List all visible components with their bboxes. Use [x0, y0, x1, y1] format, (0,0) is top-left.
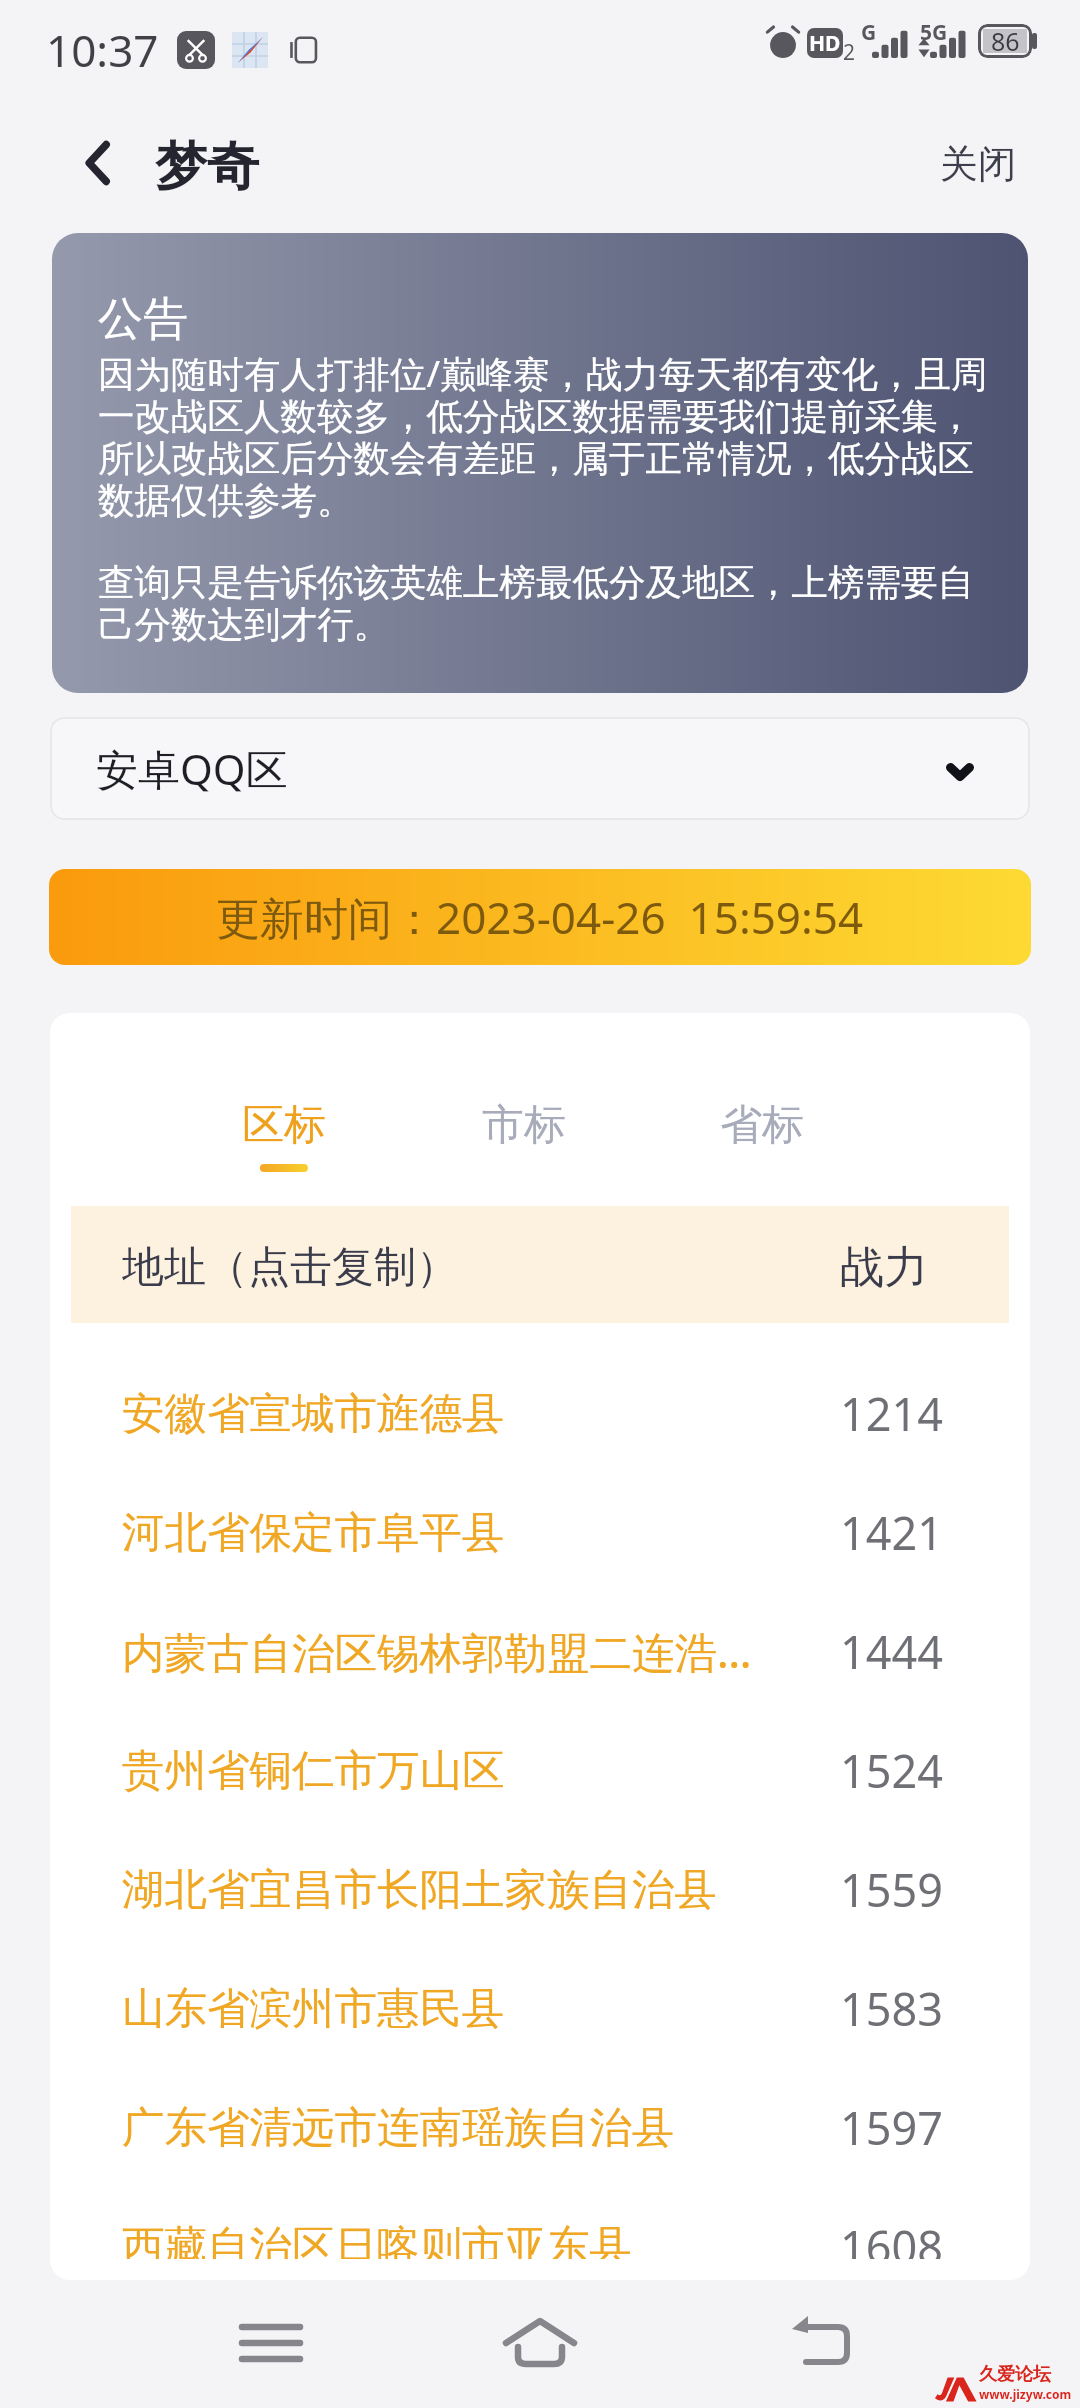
- staticText: 关闭: [940, 140, 1016, 188]
- staticText: 久爱论坛: [979, 2363, 1051, 2386]
- staticText: G: [861, 18, 877, 47]
- staticText: HD: [809, 29, 841, 58]
- staticText: 公告: [98, 291, 188, 348]
- staticText: 山东省滨州市惠民县: [122, 1982, 505, 2036]
- staticText: 省标: [720, 1099, 804, 1152]
- staticText: 广东省清远市连南瑶族自治县: [122, 2101, 675, 2155]
- button[interactable]: 区标: [224, 1099, 344, 1172]
- button[interactable]: 湖北省宜昌市长阳土家族自治县: [50, 1830, 1030, 1949]
- staticText: 5G: [920, 18, 948, 47]
- staticText: 西藏自治区日喀则市亚东县: [122, 2220, 632, 2259]
- staticText: 1597: [840, 2097, 943, 2158]
- staticText: 更新时间：2023-04-26 15:59:54: [216, 887, 864, 947]
- staticText: 1444: [840, 1621, 943, 1682]
- staticText: 1583: [840, 1978, 943, 2039]
- staticText: 内蒙古自治区锡林郭勒盟二连浩…: [122, 1623, 752, 1681]
- button[interactable]: 西藏自治区日喀则市亚东县: [50, 2187, 1030, 2259]
- button[interactable]: 安卓QQ区: [50, 717, 1030, 820]
- staticText: 贵州省铜仁市万山区: [122, 1744, 505, 1798]
- button[interactable]: 广东省清远市连南瑶族自治县: [50, 2068, 1030, 2187]
- button[interactable]: 贵州省铜仁市万山区: [50, 1711, 1030, 1830]
- staticText: 地址（点击复制）: [122, 1241, 458, 1294]
- button[interactable]: 安徽省宣城市旌德县: [50, 1354, 1030, 1473]
- staticText: 区标: [242, 1099, 326, 1152]
- staticText: 1559: [840, 1859, 943, 1920]
- staticText: 1421: [840, 1502, 943, 1563]
- button[interactable]: 市标: [464, 1099, 584, 1172]
- staticText: 安卓QQ区: [96, 740, 288, 797]
- button[interactable]: 河北省保定市阜平县: [50, 1473, 1030, 1592]
- staticText: 1214: [840, 1383, 943, 1444]
- button[interactable]: 关闭: [934, 134, 1022, 194]
- staticText: 湖北省宜昌市长阳土家族自治县: [122, 1863, 717, 1917]
- staticText: 河北省保定市阜平县: [122, 1506, 505, 1560]
- button[interactable]: 山东省滨州市惠民县: [50, 1949, 1030, 2068]
- staticText: 86: [991, 24, 1020, 58]
- staticText: 安徽省宣城市旌德县: [122, 1387, 505, 1441]
- button[interactable]: Home: [485, 2288, 595, 2398]
- staticText: 查询只是告诉你该英雄上榜最低分及地区，上榜需要自己分数达到才行。: [98, 560, 1010, 648]
- button[interactable]: 省标: [702, 1099, 822, 1172]
- button[interactable]: Back: [59, 125, 135, 201]
- staticText: 2: [843, 38, 856, 67]
- staticText: 市标: [482, 1099, 566, 1152]
- staticText: 1524: [840, 1740, 943, 1801]
- staticText: 因为随时有人打排位/巅峰赛，战力每天都有变化，且周一改战区人数较多，低分战区数据…: [98, 348, 1010, 524]
- staticText: 梦奇: [155, 134, 259, 200]
- button[interactable]: 内蒙古自治区锡林郭勒盟二连浩…: [50, 1592, 1030, 1711]
- staticText: 1608: [840, 2216, 943, 2259]
- staticText: www.jizyw.com: [979, 2386, 1072, 2402]
- staticText: 10:37: [46, 20, 159, 80]
- button[interactable]: Recent apps: [216, 2288, 326, 2398]
- staticText: 战力: [840, 1240, 928, 1295]
- button[interactable]: Back: [768, 2288, 878, 2398]
